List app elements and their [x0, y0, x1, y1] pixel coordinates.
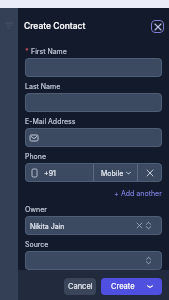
staticText: First Name — [31, 47, 67, 55]
staticText: E-Mail Address — [25, 117, 76, 125]
button[interactable] — [25, 251, 162, 270]
button[interactable]: Cancel — [64, 278, 96, 295]
button[interactable] — [25, 93, 162, 112]
staticText: + — [114, 189, 119, 197]
staticText: Cancel — [68, 282, 93, 291]
staticText: Mobile — [101, 169, 124, 177]
staticText: Phone — [25, 152, 47, 160]
button[interactable]: Close — [151, 20, 164, 33]
staticText: Create Contact — [24, 21, 86, 31]
button[interactable]: Nikita Jain — [25, 216, 162, 235]
staticText: * — [25, 47, 29, 55]
button[interactable] — [25, 58, 162, 77]
staticText: Source — [25, 240, 49, 248]
button[interactable]: Mobile — [94, 163, 137, 182]
staticText: Add another — [121, 189, 162, 197]
button[interactable] — [25, 128, 162, 147]
staticText: Create — [111, 282, 135, 291]
staticText: Last Name — [25, 82, 61, 90]
staticText: +91 — [44, 169, 56, 177]
staticText: Owner — [25, 205, 47, 213]
staticText: Nikita Jain — [30, 222, 65, 230]
button[interactable]: +91 — [25, 163, 93, 182]
button[interactable]: + — [114, 188, 162, 197]
button[interactable]: Remove phone number — [138, 163, 162, 182]
button[interactable]: Create — [101, 278, 162, 295]
